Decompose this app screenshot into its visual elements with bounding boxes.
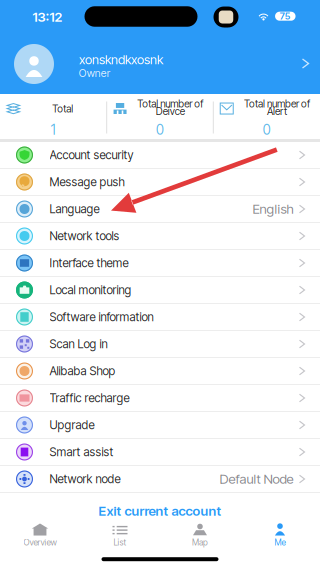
staticText: Total number of	[137, 98, 203, 110]
staticText: Interface theme	[49, 256, 128, 270]
staticText: Deivce	[156, 105, 185, 118]
staticText: Default Node	[219, 471, 293, 487]
staticText: Local monitoring	[49, 283, 131, 297]
button[interactable]: xonskndkxosnk	[0, 34, 320, 94]
staticText: Total	[52, 103, 73, 115]
button[interactable]: Scan Log in	[0, 331, 320, 358]
staticText: Network node	[49, 472, 120, 486]
staticText: 13:12	[32, 9, 62, 25]
button[interactable]: Software information	[0, 304, 320, 331]
button[interactable]: Alibaba Shop	[0, 358, 320, 385]
staticText: Total number of	[244, 98, 310, 110]
staticText: Scan Log in	[49, 337, 107, 351]
staticText: Upgrade	[49, 418, 94, 432]
staticText: Smart assist	[49, 445, 113, 459]
button[interactable]: Language	[0, 196, 320, 223]
button[interactable]: Network node	[0, 466, 320, 493]
staticText: Alert	[267, 105, 287, 118]
button[interactable]: Me	[240, 520, 320, 550]
staticText: 0	[263, 122, 271, 138]
button[interactable]: Exit current account	[0, 493, 320, 520]
staticText: Overview	[23, 537, 56, 548]
staticText: Language	[49, 202, 99, 216]
button[interactable]: Account security	[0, 142, 320, 169]
staticText: 75	[280, 11, 291, 22]
staticText: Software information	[49, 310, 153, 324]
button[interactable]: Network tools	[0, 223, 320, 250]
staticText: Account security	[49, 148, 133, 162]
staticText: Map	[192, 537, 208, 548]
button[interactable]: Overview	[0, 520, 80, 550]
staticText: Message push	[49, 175, 124, 189]
staticText: Me	[274, 537, 285, 548]
staticText: Owner	[79, 66, 110, 79]
staticText: Alibaba Shop	[49, 364, 115, 378]
button[interactable]: Smart assist	[0, 439, 320, 466]
staticText: Network tools	[49, 229, 119, 243]
button[interactable]: Upgrade	[0, 412, 320, 439]
button[interactable]: Interface theme	[0, 250, 320, 277]
staticText: 1	[51, 122, 56, 138]
button[interactable]: Message push	[0, 169, 320, 196]
button[interactable]: Map	[160, 520, 240, 550]
staticText: English	[252, 201, 293, 217]
button[interactable]: Traffic recharge	[0, 385, 320, 412]
staticText: Exit current account	[98, 503, 221, 519]
staticText: Traffic recharge	[49, 391, 129, 405]
staticText: List	[113, 537, 126, 548]
button[interactable]: Local monitoring	[0, 277, 320, 304]
button[interactable]: List	[80, 520, 160, 550]
staticText: 0	[156, 122, 164, 138]
staticText: xonskndkxosnk	[79, 52, 163, 67]
